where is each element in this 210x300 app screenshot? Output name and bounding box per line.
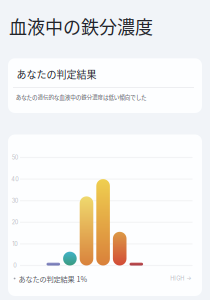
- staticText: あなたの遺伝的な血液中の鉄分濃度は低い傾向でした: [16, 93, 147, 101]
- staticText: 40: [11, 176, 19, 182]
- staticText: 50: [12, 154, 19, 161]
- staticText: 10: [12, 240, 18, 247]
- staticText: 20: [12, 219, 19, 226]
- staticText: 30: [12, 197, 19, 204]
- staticText: 0: [13, 262, 17, 269]
- staticText: HIGH →: [170, 275, 191, 282]
- staticText: あなたの判定結果: [16, 67, 96, 81]
- staticText: 血液中の鉄分濃度: [9, 13, 153, 39]
- staticText: あなたの判定結果 1%: [18, 274, 87, 284]
